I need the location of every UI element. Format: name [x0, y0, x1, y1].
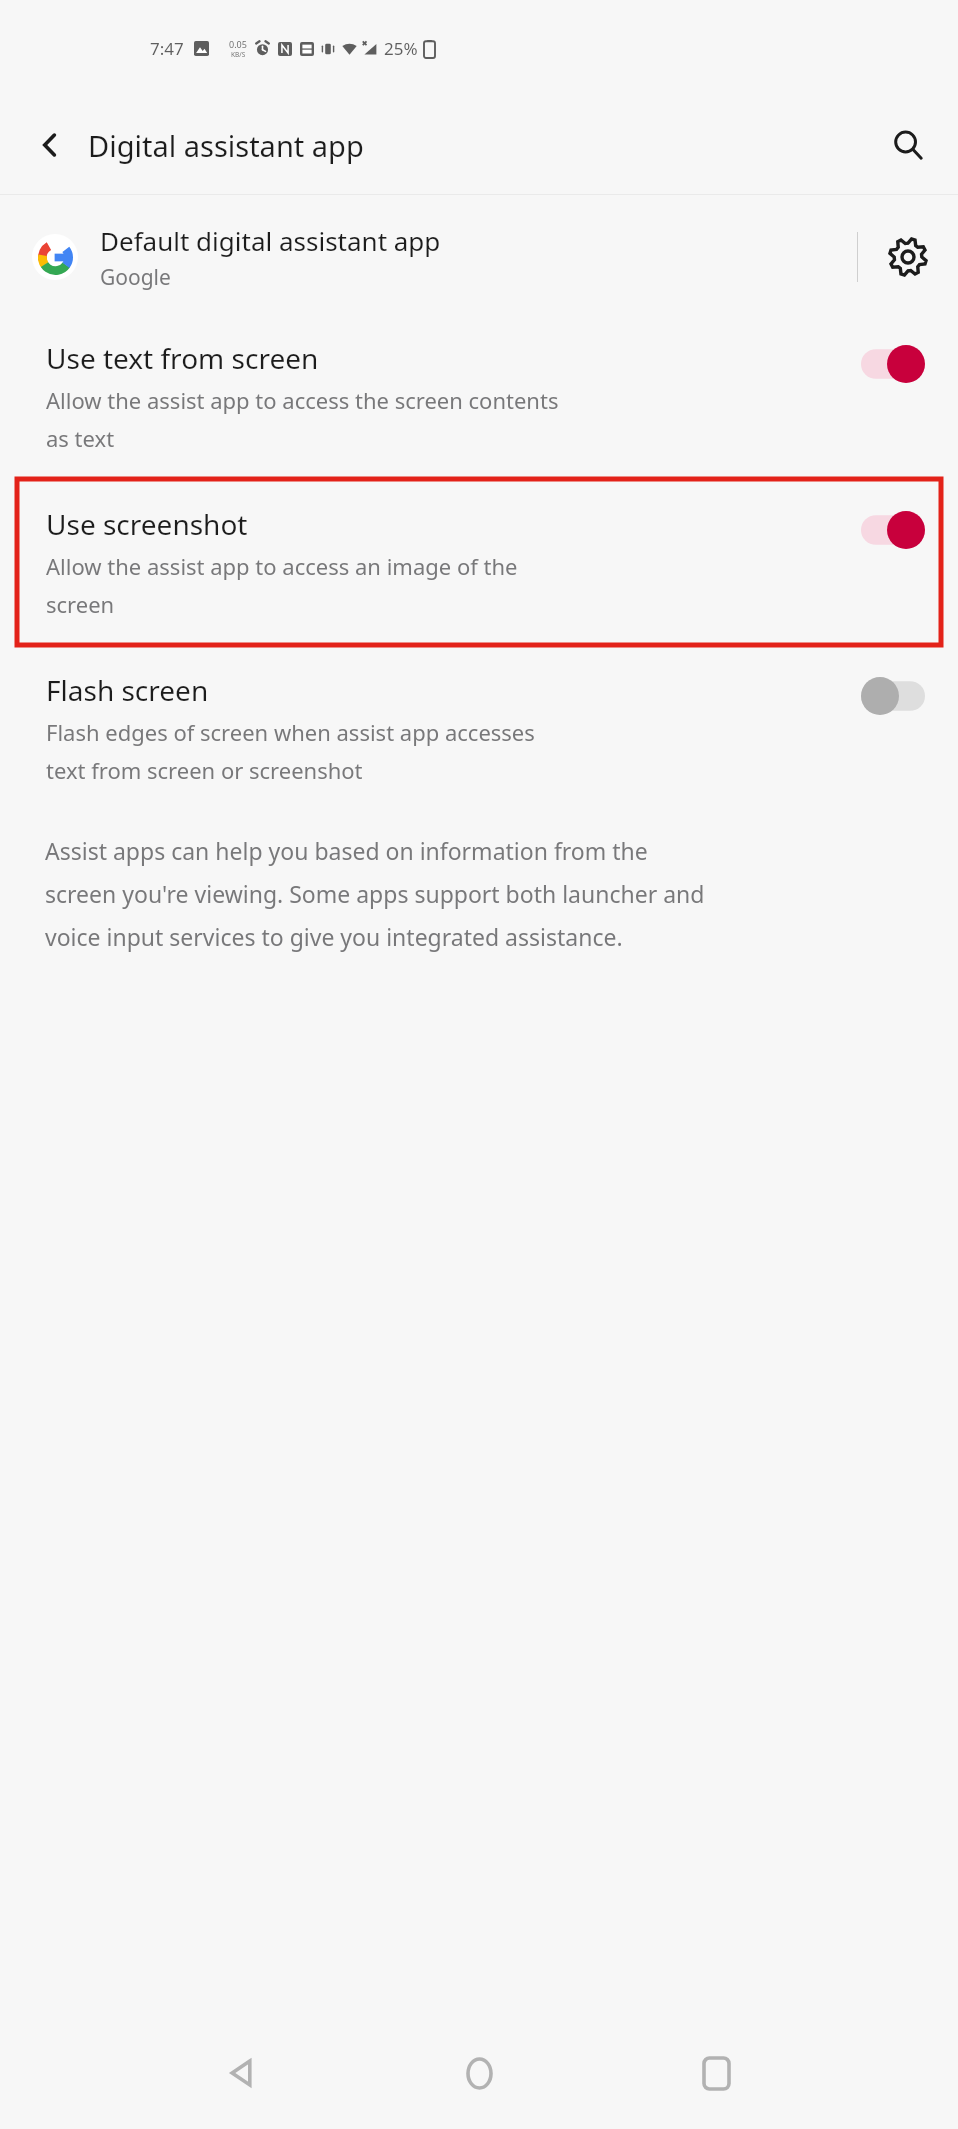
- staticText: text from screen or screenshot: [46, 755, 363, 785]
- staticText: 7:47: [150, 37, 184, 60]
- button[interactable]: Search: [876, 113, 940, 177]
- button[interactable]: Settings: [858, 195, 958, 319]
- button[interactable]: Enabled: [861, 511, 925, 549]
- staticText: screen: [46, 589, 115, 619]
- staticText: Use text from screen: [46, 339, 319, 377]
- staticText: Allow the assist app to access the scree…: [46, 385, 559, 415]
- button[interactable]: Disabled: [861, 677, 925, 715]
- staticText: Google: [100, 263, 171, 292]
- staticText: KB/S: [231, 50, 246, 59]
- button[interactable]: Enabled: [861, 345, 925, 383]
- staticText: Assist apps can help you based on inform…: [45, 835, 648, 866]
- button[interactable]: Back: [22, 117, 78, 173]
- staticText: Digital assistant app: [88, 126, 364, 165]
- staticText: 25%: [384, 37, 418, 60]
- button[interactable]: Flash screen: [0, 651, 958, 805]
- staticText: 0.05: [229, 38, 247, 50]
- staticText: Default digital assistant app: [100, 223, 441, 258]
- button[interactable]: Recent apps: [674, 2031, 758, 2115]
- staticText: screen you're viewing. Some apps support…: [45, 878, 705, 909]
- staticText: voice input services to give you integra…: [45, 921, 623, 952]
- button[interactable]: Use text from screen: [0, 319, 958, 473]
- staticText: Flash screen: [46, 671, 209, 709]
- button[interactable]: Home: [437, 2031, 521, 2115]
- button[interactable]: Use screenshot: [17, 479, 941, 645]
- staticText: Use screenshot: [46, 505, 248, 543]
- staticText: Allow the assist app to access an image …: [46, 551, 518, 581]
- button[interactable]: Default digital assistant app: [0, 195, 958, 319]
- button[interactable]: Back: [200, 2031, 284, 2115]
- staticText: as text: [46, 423, 115, 453]
- staticText: Flash edges of screen when assist app ac…: [46, 717, 535, 747]
